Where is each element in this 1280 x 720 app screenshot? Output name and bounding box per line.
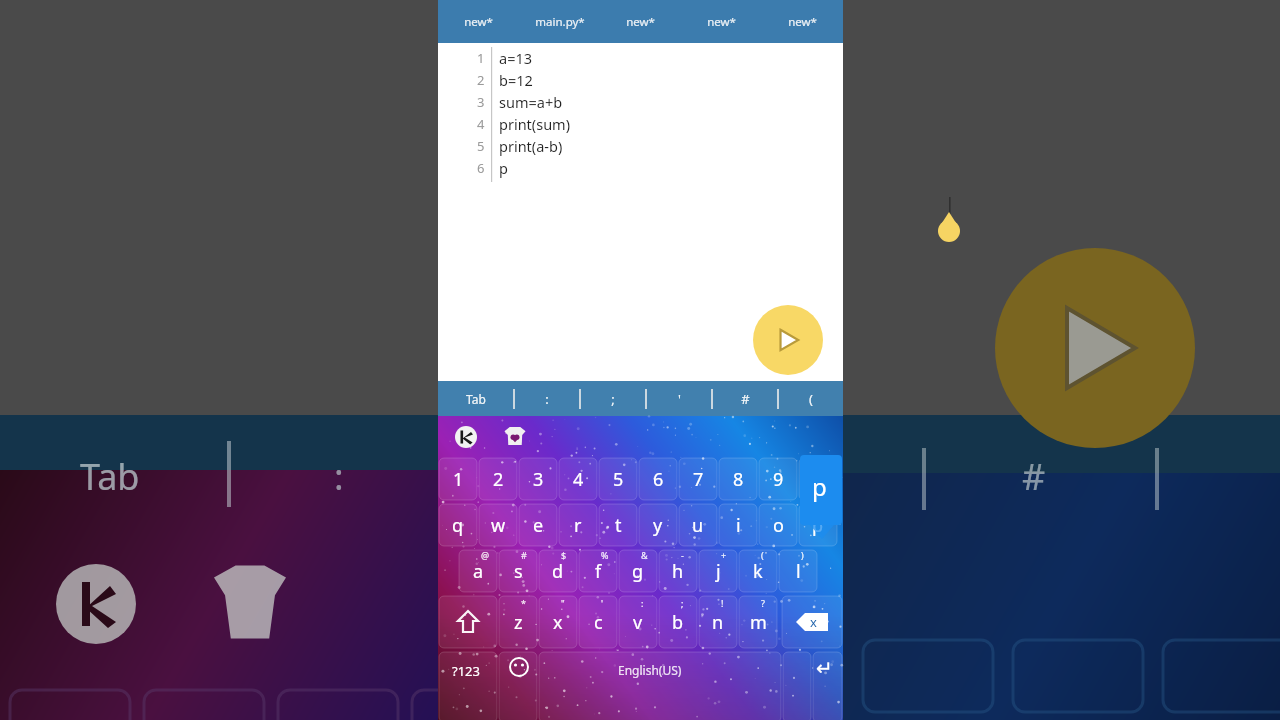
staticText: p: [499, 158, 508, 178]
button[interactable]: s: [499, 550, 537, 592]
button[interactable]: z: [499, 596, 537, 648]
button[interactable]: j: [699, 550, 737, 592]
button[interactable]: l: [779, 550, 817, 592]
button[interactable]: y: [639, 504, 677, 546]
staticText: e: [533, 513, 544, 538]
button[interactable]: Themes: [503, 424, 527, 448]
staticText: o: [773, 513, 784, 538]
staticText: :: [545, 390, 549, 408]
button[interactable]: new*: [438, 0, 519, 43]
button[interactable]: Tab: [438, 381, 513, 416]
button[interactable]: Space: [539, 652, 781, 676]
button[interactable]: r: [559, 504, 597, 546]
button[interactable]: 8: [719, 458, 757, 500]
staticText: 2: [477, 71, 485, 89]
button[interactable]: (: [779, 381, 843, 416]
staticText: b: [672, 610, 684, 635]
staticText: m: [750, 610, 767, 635]
button[interactable]: 5: [599, 458, 637, 500]
staticText: -: [681, 549, 684, 561]
staticText: 5: [477, 137, 485, 155]
staticText: (: [809, 390, 813, 408]
button[interactable]: new*: [681, 0, 762, 43]
button[interactable]: Emoji: [510, 658, 528, 676]
button[interactable]: 4: [559, 458, 597, 500]
button[interactable]: o: [759, 504, 797, 546]
button[interactable]: x: [539, 596, 577, 648]
button[interactable]: main.py*: [519, 0, 600, 43]
button[interactable]: new*: [762, 0, 843, 43]
staticText: ;: [611, 390, 615, 408]
button[interactable]: g: [619, 550, 657, 592]
staticText: ↵: [816, 656, 833, 679]
button[interactable]: t: [599, 504, 637, 546]
button[interactable]: 1: [439, 458, 477, 500]
staticText: 4: [573, 467, 584, 492]
staticText: g: [632, 559, 644, 584]
button[interactable]: f: [579, 550, 617, 592]
button[interactable]: [799, 458, 837, 500]
staticText: x: [553, 610, 563, 635]
staticText: 1: [477, 49, 485, 67]
button[interactable]: :: [515, 381, 579, 416]
staticText: l: [796, 559, 801, 584]
button[interactable]: Shift: [439, 596, 497, 648]
button[interactable]: ;: [581, 381, 645, 416]
button[interactable]: m: [739, 596, 777, 648]
staticText: new*: [788, 14, 817, 30]
button[interactable]: u: [679, 504, 717, 546]
button[interactable]: #: [713, 381, 777, 416]
button[interactable]: ': [647, 381, 711, 416]
button[interactable]: new*: [600, 0, 681, 43]
staticText: 2: [493, 467, 504, 492]
button[interactable]: d: [539, 550, 577, 592]
button[interactable]: v: [619, 596, 657, 648]
button[interactable]: w: [479, 504, 517, 546]
staticText: 5: [613, 467, 624, 492]
staticText: f: [595, 559, 602, 584]
staticText: k: [753, 559, 763, 584]
button[interactable]: Backspace: [782, 596, 842, 648]
staticText: z: [514, 610, 523, 635]
staticText: 6: [653, 467, 664, 492]
button[interactable]: 2: [479, 458, 517, 500]
button[interactable]: p: [799, 504, 837, 546]
button[interactable]: 7: [679, 458, 717, 500]
staticText: t: [615, 513, 622, 538]
button[interactable]: e: [519, 504, 557, 546]
staticText: 6: [477, 159, 485, 177]
button[interactable]: n: [699, 596, 737, 648]
button[interactable]: c: [579, 596, 617, 648]
staticText: i: [736, 513, 741, 538]
button[interactable]: k: [739, 550, 777, 592]
button[interactable]: Run: [753, 305, 823, 375]
button[interactable]: q: [439, 504, 477, 546]
staticText: print(a-b): [499, 136, 563, 156]
staticText: main.py*: [535, 14, 585, 30]
staticText: new*: [707, 14, 736, 30]
staticText: ": [561, 597, 565, 609]
button[interactable]: 6: [639, 458, 677, 500]
staticText: n: [712, 610, 724, 635]
staticText: a=13: [499, 48, 533, 68]
button[interactable]: i: [719, 504, 757, 546]
button[interactable]: a: [459, 550, 497, 592]
button[interactable]: Keyboard menu: [455, 426, 477, 448]
staticText: %: [601, 549, 609, 561]
button[interactable]: 9: [759, 458, 797, 500]
button[interactable]: b: [659, 596, 697, 648]
button[interactable]: 3: [519, 458, 557, 500]
staticText: v: [633, 610, 643, 635]
staticText: c: [594, 610, 603, 635]
staticText: 3: [477, 93, 485, 111]
staticText: y: [653, 513, 663, 538]
staticText: new*: [464, 14, 493, 30]
staticText: $: [561, 549, 567, 561]
staticText: h: [672, 559, 684, 584]
staticText: ?: [761, 597, 765, 609]
button[interactable]: h: [659, 550, 697, 592]
staticText: j: [716, 559, 721, 584]
staticText: ?123: [452, 662, 480, 680]
staticText: 7: [693, 467, 704, 492]
staticText: 4: [477, 115, 485, 133]
